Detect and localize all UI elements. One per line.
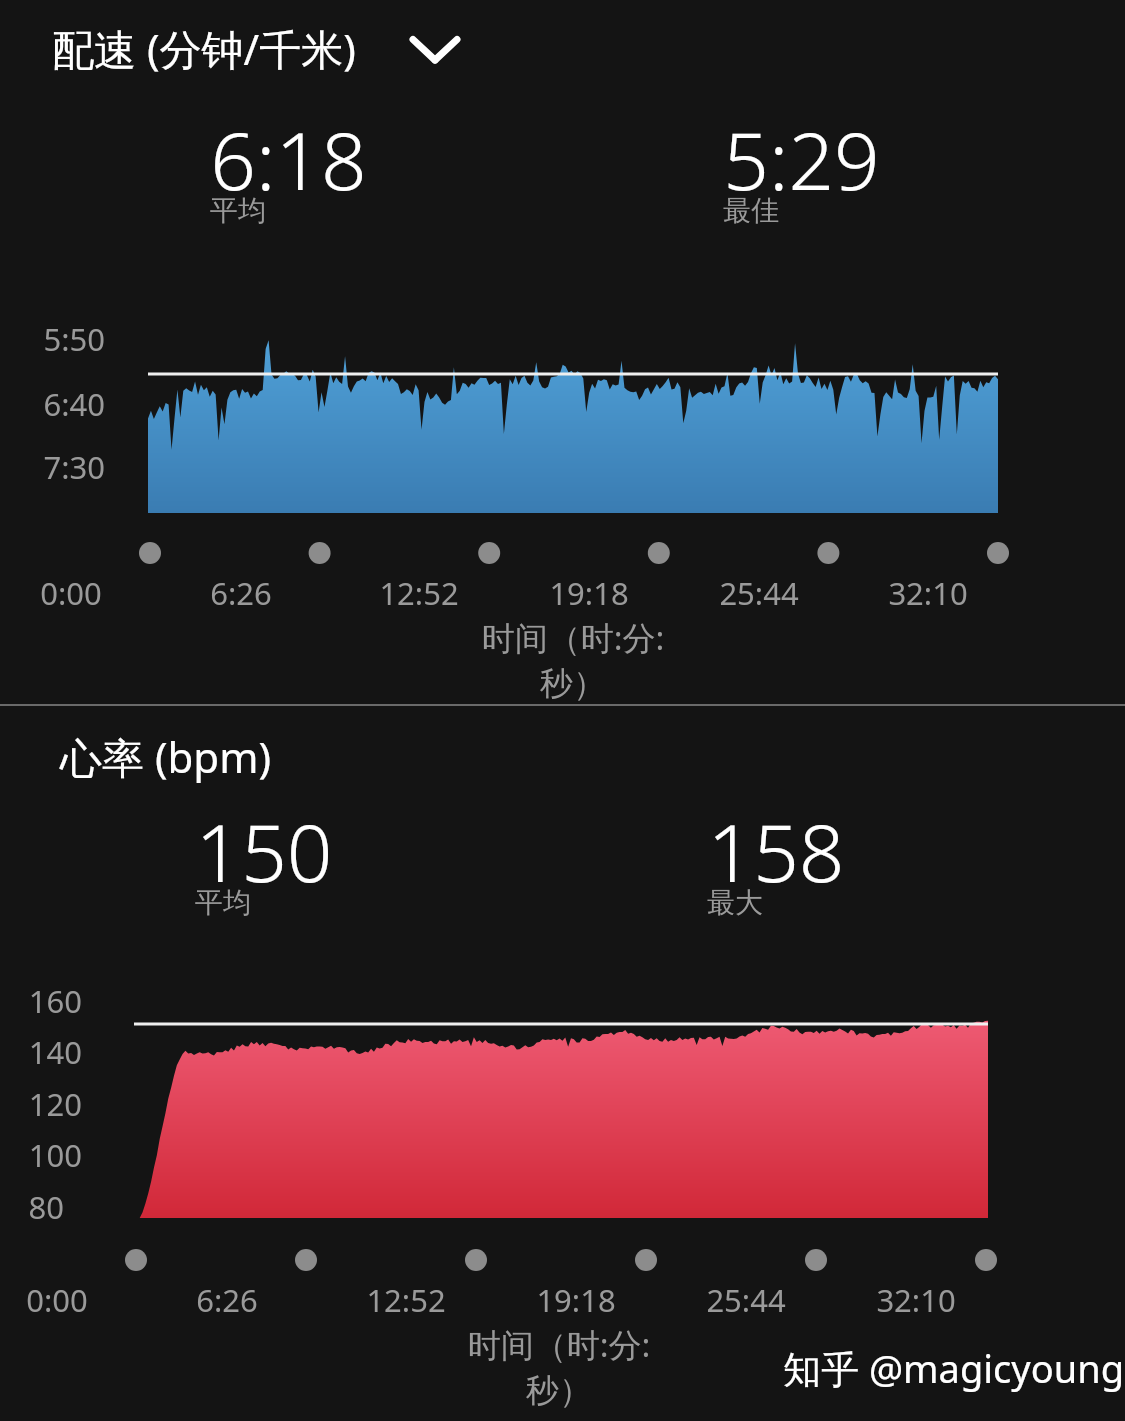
staticText: 32:10 xyxy=(888,572,968,614)
staticText: 平均 xyxy=(210,193,266,228)
staticText: 160 xyxy=(28,980,82,1022)
staticText: 19:18 xyxy=(549,572,629,614)
staticText: 0:00 xyxy=(40,572,102,614)
staticText: 知乎 @magicyoung xyxy=(783,1342,1125,1394)
staticText: 5:29 xyxy=(723,104,880,213)
staticText: 12:52 xyxy=(366,1279,446,1321)
staticText: 6:26 xyxy=(210,572,272,614)
staticText: 5:50 xyxy=(43,318,105,360)
staticText: 时间（时:分:秒） xyxy=(463,615,683,705)
staticText: 25:44 xyxy=(706,1279,786,1321)
staticText: 140 xyxy=(28,1031,82,1073)
staticText: 0:00 xyxy=(26,1279,88,1321)
button[interactable]: 心率 (bpm) xyxy=(60,728,272,785)
staticText: 32:10 xyxy=(876,1279,956,1321)
staticText: 150 xyxy=(195,796,333,905)
staticText: 19:18 xyxy=(536,1279,616,1321)
staticText: 时间（时:分:秒） xyxy=(449,1322,669,1412)
staticText: 6:26 xyxy=(196,1279,258,1321)
staticText: 6:18 xyxy=(210,104,367,213)
button[interactable]: 配速 (分钟/千米) xyxy=(52,20,356,77)
staticText: 7:30 xyxy=(43,446,105,488)
staticText: 100 xyxy=(28,1134,82,1176)
staticText: 158 xyxy=(707,796,845,905)
staticText: 80 xyxy=(28,1186,64,1228)
staticText: 配速 (分钟/千米) xyxy=(52,20,356,77)
staticText: 平均 xyxy=(195,885,251,920)
staticText: 25:44 xyxy=(719,572,799,614)
staticText: 6:40 xyxy=(43,383,105,425)
staticText: 12:52 xyxy=(379,572,459,614)
staticText: 最佳 xyxy=(723,193,779,228)
staticText: 最大 xyxy=(707,885,763,920)
staticText: 心率 (bpm) xyxy=(60,728,272,785)
staticText: 120 xyxy=(28,1083,82,1125)
